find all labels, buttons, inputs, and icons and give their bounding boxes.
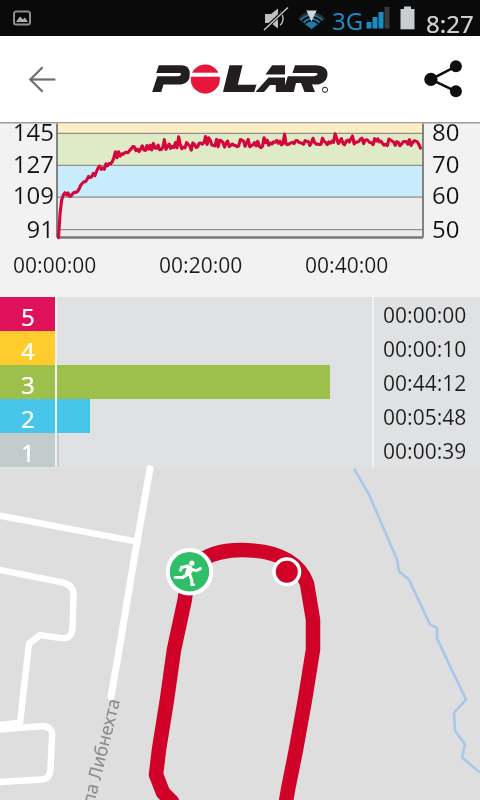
staticText: 80 bbox=[432, 115, 460, 141]
staticText: 00:00:00 bbox=[13, 251, 97, 280]
staticText: 91 bbox=[26, 212, 54, 238]
staticText: 3 bbox=[21, 368, 35, 401]
button[interactable]: 3 bbox=[0, 365, 480, 399]
button[interactable]: 4 bbox=[0, 331, 480, 365]
staticText: 00:00:10 bbox=[383, 335, 467, 364]
staticText: 109 bbox=[12, 178, 54, 204]
staticText: 00:20:00 bbox=[159, 251, 243, 280]
staticText: 4 bbox=[21, 334, 35, 367]
staticText: 127 bbox=[12, 147, 54, 173]
staticText: 00:00:39 bbox=[383, 437, 467, 466]
staticText: 00:05:48 bbox=[383, 403, 467, 432]
button[interactable]: 5 bbox=[0, 297, 480, 331]
staticText: 145 bbox=[12, 115, 54, 141]
staticText: 00:44:12 bbox=[383, 369, 467, 398]
button[interactable]: 2 bbox=[0, 399, 480, 433]
staticText: 1 bbox=[21, 436, 35, 469]
staticText: рла Либнехта bbox=[73, 696, 126, 800]
button[interactable]: 1 bbox=[0, 433, 480, 467]
staticText: 50 bbox=[432, 212, 460, 238]
staticText: 3G bbox=[332, 4, 364, 37]
staticText: 00:40:00 bbox=[305, 251, 389, 280]
staticText: 8:27 bbox=[426, 7, 474, 40]
staticText: 70 bbox=[432, 147, 460, 173]
button[interactable]: Share bbox=[400, 36, 480, 122]
staticText: 00:00:00 bbox=[383, 301, 467, 330]
staticText: 5 bbox=[21, 300, 35, 333]
staticText: 2 bbox=[21, 402, 35, 435]
button[interactable]: Back bbox=[0, 36, 80, 122]
staticText: 60 bbox=[432, 178, 460, 204]
